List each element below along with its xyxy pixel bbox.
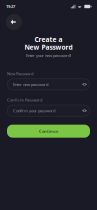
staticText: New Password (7, 71, 33, 76)
staticText: Confirm Password (7, 97, 42, 103)
button[interactable]: Back (6, 14, 22, 30)
staticText: Continue (39, 128, 58, 134)
staticText: New Password (24, 43, 72, 52)
button[interactable]: Show New Password (80, 78, 88, 90)
staticText: Create a (34, 35, 62, 44)
button[interactable]: Continue (7, 125, 90, 138)
button[interactable]: Enter new password (7, 78, 90, 90)
staticText: 19:27 (6, 4, 15, 9)
button[interactable]: Show Confirm Password (80, 105, 88, 117)
button[interactable]: Confirm your password (7, 105, 90, 117)
staticText: Enter your new password! (26, 53, 71, 58)
staticText: Enter new password (13, 82, 48, 87)
staticText: Confirm your password (13, 108, 55, 113)
